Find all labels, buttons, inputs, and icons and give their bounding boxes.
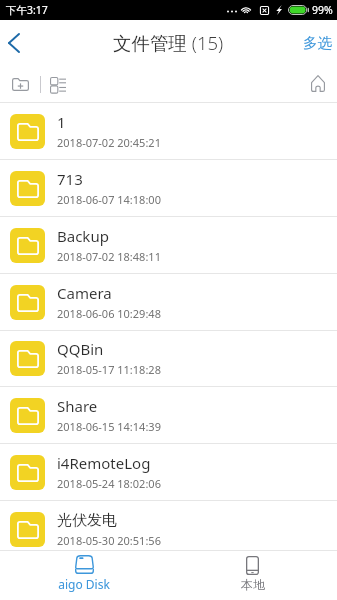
staticText: Backup [57, 226, 109, 246]
staticText: 713 [57, 169, 83, 189]
staticText: 99% [312, 3, 333, 17]
button[interactable]: 1 [0, 103, 337, 160]
staticText: 本地 [241, 577, 265, 592]
button[interactable]: List view [41, 66, 74, 103]
button[interactable]: Home [299, 66, 337, 103]
button[interactable]: Backup [0, 217, 337, 274]
staticText: 2018-06-07 14:18:00 [57, 192, 161, 207]
button[interactable]: Share [0, 387, 337, 444]
button[interactable]: 多选 [291, 20, 337, 66]
staticText: Share [57, 396, 98, 416]
button[interactable]: 光伏发电 [0, 501, 337, 550]
button[interactable]: aigo Disk [0, 551, 168, 600]
button[interactable]: i4RemoteLog [0, 444, 337, 501]
button[interactable]: QQBin [0, 330, 337, 387]
button[interactable]: Camera [0, 274, 337, 331]
button[interactable]: 本地 [168, 551, 337, 600]
staticText: 2018-05-30 20:51:56 [57, 533, 161, 548]
staticText: 文件管理 (15) [113, 30, 224, 55]
staticText: 1 [57, 112, 66, 132]
staticText: QQBin [57, 339, 104, 359]
staticText: aigo Disk [58, 576, 110, 592]
staticText: 下午3:17 [6, 3, 48, 17]
staticText: 2018-05-17 11:18:28 [57, 362, 161, 377]
button[interactable]: New folder [0, 66, 40, 103]
staticText: 多选 [303, 34, 332, 52]
staticText: 2018-07-02 20:45:21 [57, 135, 161, 150]
staticText: 2018-06-15 14:14:39 [57, 419, 161, 434]
staticText: 2018-06-06 10:29:48 [57, 306, 161, 321]
staticText: 2018-05-24 18:02:06 [57, 476, 161, 491]
staticText: Camera [57, 283, 112, 303]
staticText: 光伏发电 [57, 511, 117, 530]
staticText: i4RemoteLog [57, 453, 151, 473]
button[interactable]: 713 [0, 160, 337, 217]
staticText: 2018-07-02 18:48:11 [57, 249, 161, 264]
button[interactable]: Back [0, 20, 36, 66]
